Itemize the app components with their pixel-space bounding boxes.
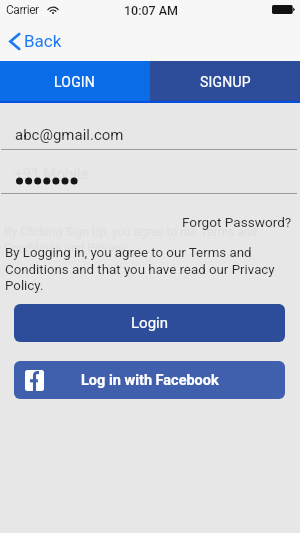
staticText: +91 Mobile: [14, 165, 89, 183]
button[interactable]: SIGNUP: [150, 61, 300, 103]
other: Battery full: [272, 4, 295, 15]
button[interactable]: Back: [0, 26, 74, 56]
staticText: Back: [24, 31, 62, 51]
button[interactable]: Forgot Password?: [180, 212, 294, 232]
button[interactable]: Log in with Facebook: [14, 361, 285, 399]
staticText: Forgot Password?: [182, 214, 292, 230]
staticText: 10:07 AM: [124, 3, 179, 18]
button[interactable]: Login: [14, 304, 285, 342]
staticText: By Logging in, you agree to our Terms an…: [5, 245, 283, 293]
button[interactable]: abc@gmail.com: [14, 125, 125, 145]
staticText: Carrier: [6, 3, 39, 17]
staticText: LOGIN: [54, 74, 96, 90]
staticText: By Clicking Sign Up, you agree to our Te…: [4, 225, 294, 255]
staticText: Log in with Facebook: [81, 372, 219, 389]
staticText: SIGNUP: [200, 74, 251, 90]
button[interactable]: [16, 177, 78, 185]
button[interactable]: LOGIN: [0, 61, 150, 103]
staticText: Login: [131, 314, 168, 332]
